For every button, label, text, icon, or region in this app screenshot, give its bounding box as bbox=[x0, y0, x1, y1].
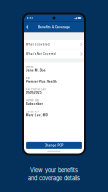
staticText: Subscriber bbox=[26, 102, 43, 106]
staticText: View your benefits bbox=[30, 167, 78, 173]
staticText: Change PCP bbox=[44, 144, 63, 147]
button[interactable]: Change PCP bbox=[26, 142, 82, 149]
staticText: Member Type bbox=[26, 99, 39, 102]
staticText: Plan Effective Date bbox=[26, 88, 46, 91]
staticText: Benefits & Coverage bbox=[38, 25, 70, 29]
staticText: What's Covered bbox=[26, 43, 50, 46]
staticText: 01/01/2025 bbox=[26, 91, 42, 94]
staticText: and coverage details bbox=[28, 175, 80, 181]
button[interactable]: What's Not Covered bbox=[24, 49, 84, 58]
staticText: Jane M. Doe bbox=[26, 69, 46, 72]
staticText: What's Not Covered bbox=[26, 52, 56, 56]
staticText: Current PCP bbox=[26, 110, 39, 113]
button[interactable]: What's Covered bbox=[24, 40, 84, 49]
staticText: Premier Plus Health bbox=[26, 80, 57, 83]
staticText: Mary Lee, MD bbox=[26, 113, 48, 117]
staticText: Plan bbox=[26, 77, 30, 79]
staticText: 9:41 bbox=[27, 16, 33, 20]
button[interactable]: Back bbox=[24, 23, 30, 31]
staticText: Member bbox=[26, 66, 34, 68]
